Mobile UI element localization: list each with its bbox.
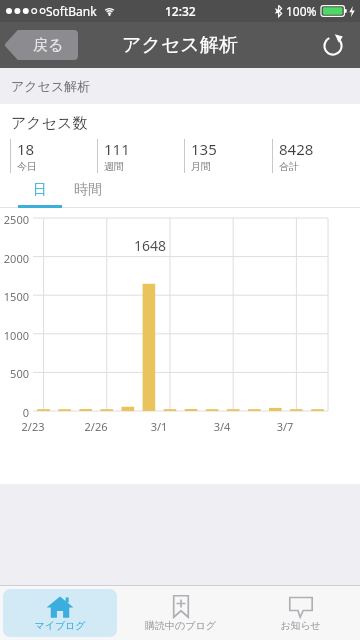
- staticText: 2500: [0, 212, 29, 227]
- staticText: アクセス数: [11, 114, 88, 133]
- button[interactable]: 購読中のブログ: [123, 589, 237, 637]
- button[interactable]: 時間: [62, 175, 114, 205]
- staticText: 2000: [0, 251, 29, 266]
- staticText: 2/26: [80, 419, 112, 434]
- staticText: 3/4: [206, 419, 238, 434]
- button[interactable]: Refresh: [314, 26, 352, 64]
- staticText: アクセス解析: [122, 33, 238, 57]
- staticText: マイブログ: [34, 619, 86, 632]
- staticText: 戻る: [33, 36, 64, 55]
- staticText: 今日: [17, 160, 37, 173]
- staticText: 3/1: [143, 419, 175, 434]
- staticText: 100%: [286, 3, 317, 19]
- staticText: お知らせ: [280, 619, 321, 632]
- staticText: 時間: [74, 181, 102, 199]
- staticText: 2/23: [17, 419, 49, 434]
- staticText: 購読中のブログ: [145, 619, 216, 632]
- button[interactable]: 日: [18, 175, 62, 205]
- staticText: 月間: [191, 160, 211, 173]
- staticText: 135: [191, 139, 217, 159]
- staticText: 0: [0, 405, 29, 420]
- button[interactable]: お知らせ: [243, 589, 357, 637]
- button[interactable]: マイブログ: [3, 589, 117, 637]
- staticText: 日: [33, 181, 47, 199]
- staticText: 8428: [279, 139, 314, 159]
- staticText: 18: [17, 139, 35, 159]
- staticText: 1500: [0, 289, 29, 304]
- staticText: 111: [104, 139, 130, 159]
- staticText: 週間: [104, 160, 124, 173]
- staticText: 3/7: [269, 419, 301, 434]
- staticText: 1648: [130, 236, 170, 255]
- staticText: 1000: [0, 328, 29, 343]
- staticText: 500: [0, 366, 29, 381]
- staticText: 合計: [279, 160, 299, 173]
- staticText: アクセス解析: [11, 78, 91, 94]
- button[interactable]: 戻る: [4, 30, 78, 60]
- staticText: 12:32: [165, 3, 196, 19]
- staticText: SoftBank: [46, 3, 97, 19]
